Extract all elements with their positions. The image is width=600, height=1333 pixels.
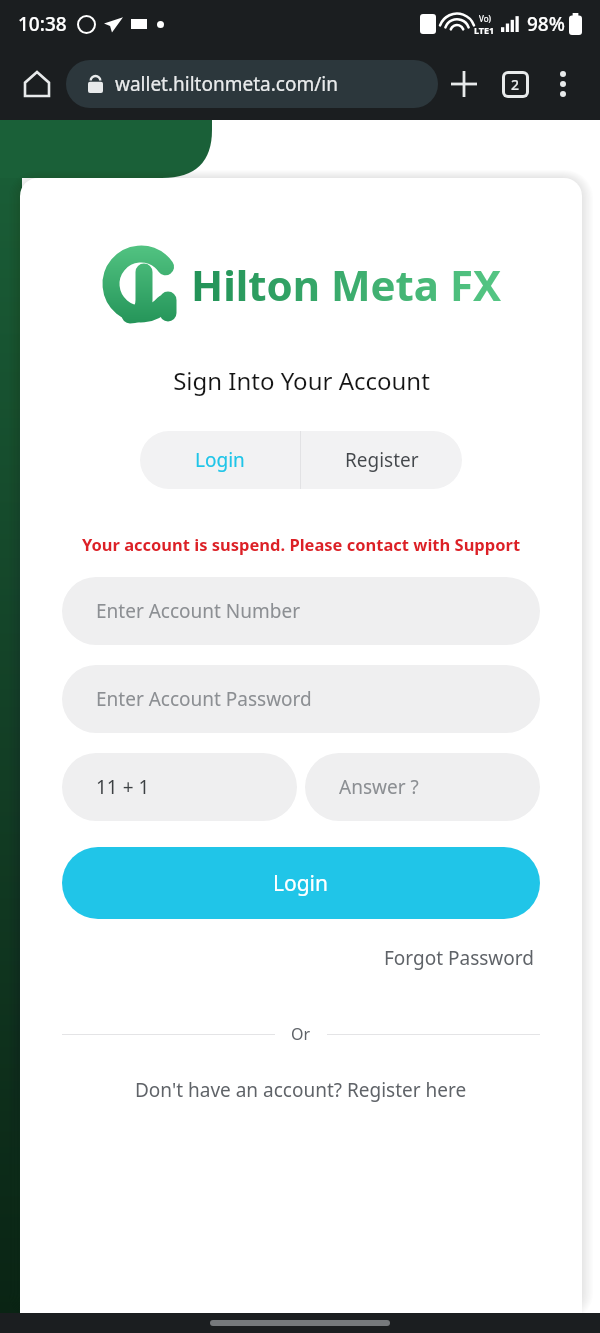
staticText: Or [291,1023,311,1045]
button[interactable]: Answer ? [305,753,540,821]
button[interactable]: Don't have an account? Register here [62,1077,540,1103]
staticText: Answer ? [339,774,419,800]
staticText: Forgot Password [384,945,534,971]
staticText: Enter Account Password [96,686,312,712]
button[interactable]: More options [540,61,586,107]
staticText: Register [345,447,419,473]
button[interactable]: 11 + 1 [62,753,297,821]
button[interactable]: Enter Account Password [62,665,540,733]
staticText: 2 [511,75,520,94]
staticText: Your account is suspend. Please contact … [62,533,540,555]
button[interactable]: Forgot Password [378,939,540,977]
staticText: Login [273,869,329,898]
staticText: 98% [527,11,565,37]
button[interactable]: wallet.hiltonmeta.com/in [66,60,438,108]
staticText: Sign Into Your Account [173,364,430,397]
button[interactable]: Tabs [490,59,540,109]
button[interactable]: New tab [438,58,490,110]
button[interactable]: Enter Account Number [62,577,540,645]
button[interactable]: Login [140,431,300,489]
button[interactable]: Login [62,847,540,919]
staticText: Login [195,447,245,473]
staticText: LTE1 [474,24,495,36]
staticText: 10:38 [18,11,67,37]
button[interactable]: Register [301,431,462,489]
staticText: 11 + 1 [96,774,150,800]
button[interactable]: Home [14,61,60,107]
staticText: Vo) [479,13,491,24]
staticText: Don't have an account? Register here [135,1077,467,1103]
staticText: Enter Account Number [96,598,301,624]
staticText: wallet.hiltonmeta.com/in [115,71,338,97]
staticText: Hilton Meta FX [191,256,502,313]
